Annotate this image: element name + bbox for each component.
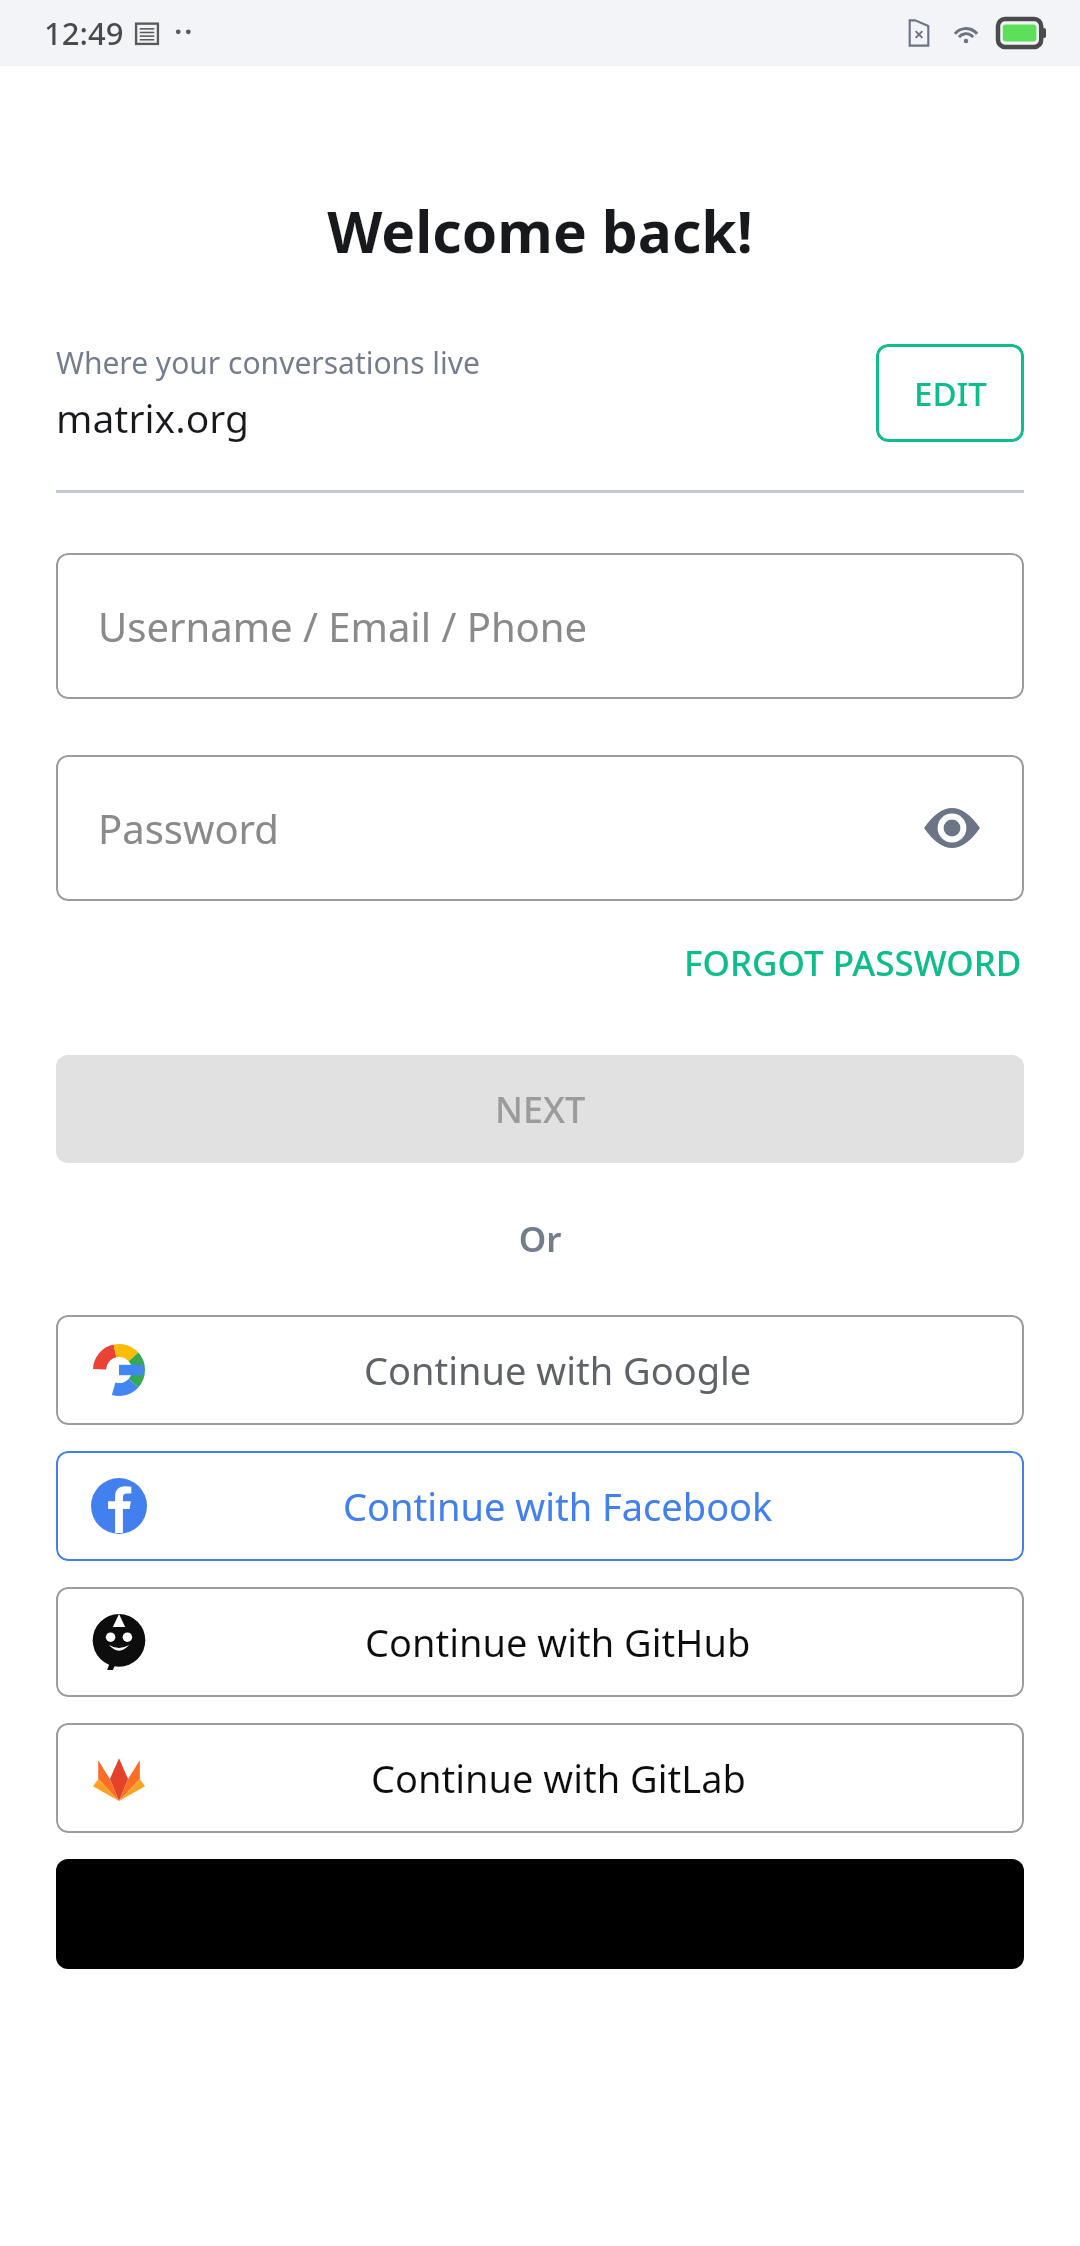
button[interactable]: NEXT [56,1055,1024,1163]
staticText: Continue with Google [364,1344,752,1396]
staticText: Continue with GitLab [371,1752,746,1804]
button[interactable]: EDIT [876,344,1024,442]
button[interactable]: FORGOT PASSWORD [676,927,1030,999]
staticText: Continue with Facebook [343,1480,773,1532]
staticText: Password [98,801,279,855]
staticText: EDIT [914,371,987,416]
button[interactable] [56,1859,1024,1969]
button[interactable]: Continue with Facebook [56,1451,1024,1561]
staticText: NEXT [495,1085,586,1134]
button[interactable]: Username / Email / Phone [56,553,1024,699]
button[interactable]: Show password [912,788,992,868]
button[interactable]: Continue with GitHub [56,1587,1024,1697]
staticText: FORGOT PASSWORD [684,939,1022,987]
staticText: Where your conversations live [56,342,480,383]
staticText: Or [0,1215,1080,1263]
staticText: matrix.org [56,391,249,444]
staticText: 12:49 [44,12,124,54]
button[interactable]: Password [56,755,1024,901]
staticText: Welcome back! [0,192,1080,270]
button[interactable]: Continue with Google [56,1315,1024,1425]
staticText: Continue with GitHub [365,1616,751,1668]
button[interactable]: Continue with GitLab [56,1723,1024,1833]
staticText: Username / Email / Phone [98,599,588,653]
